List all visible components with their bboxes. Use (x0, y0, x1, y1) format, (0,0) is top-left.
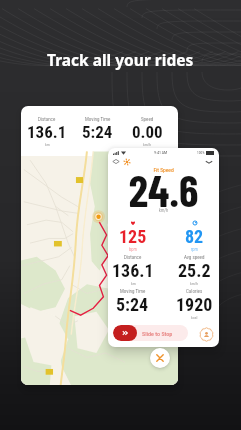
staticText: km/h (143, 142, 152, 147)
staticText: 100% (197, 151, 205, 155)
staticText: 0.00 (132, 122, 163, 142)
button[interactable]: Close (150, 348, 170, 368)
staticText: Distance (124, 254, 142, 260)
staticText: km (131, 281, 136, 286)
staticText: bpm (129, 247, 137, 252)
staticText: 82 (185, 226, 204, 247)
staticText: 5:24 (82, 122, 113, 142)
staticText: Distance (38, 116, 56, 122)
staticText: km/h (108, 208, 219, 213)
other: Stop ride (113, 325, 137, 341)
button[interactable]: Collapse (204, 157, 214, 167)
button[interactable]: Slide to Stop (113, 325, 188, 341)
staticText: rpm (191, 247, 198, 252)
staticText: km/h (190, 281, 199, 286)
staticText: 136.1 (27, 122, 67, 142)
button[interactable]: Profile (199, 327, 214, 342)
staticText: 5:24 (116, 294, 149, 315)
button[interactable]: Sensors (123, 158, 131, 166)
staticText: 125 (119, 226, 147, 247)
staticText: Moving Time (85, 116, 111, 122)
staticText: kcal (191, 315, 198, 320)
button[interactable]: Map layers (112, 158, 120, 166)
staticText: 9:41 AM (154, 150, 168, 155)
staticText: Fit Speed (108, 167, 219, 173)
staticText: 25.2 (178, 260, 211, 281)
staticText: 24.6 (108, 163, 219, 216)
staticText: Speed (141, 116, 154, 122)
staticText: Avg speed (184, 254, 205, 260)
staticText: 136.1 (112, 260, 154, 281)
staticText: Moving Time (120, 288, 146, 294)
staticText: km (45, 142, 50, 147)
staticText: Calories (186, 288, 203, 294)
staticText: Track all your rides (47, 49, 194, 70)
staticText: 1920 (176, 294, 213, 315)
staticText: Slide to Stop (142, 330, 173, 337)
